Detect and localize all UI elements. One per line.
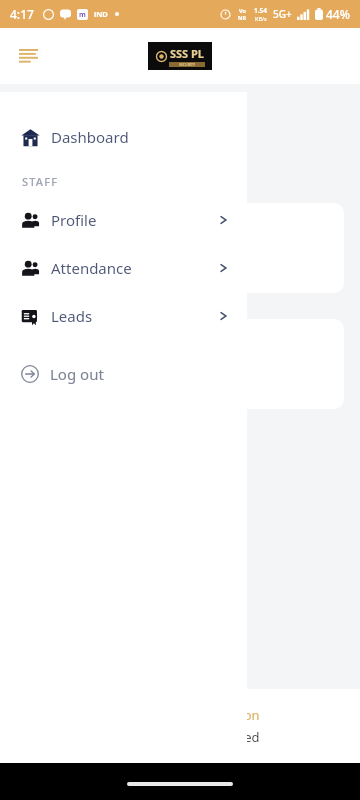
staticText: Leads <box>51 306 93 326</box>
staticText: Vo <box>239 7 246 14</box>
staticText: SECURITY <box>179 62 195 67</box>
staticText: NR <box>238 14 247 21</box>
staticText: © 2024 All rights reserved <box>101 728 260 746</box>
staticText: m <box>79 10 86 20</box>
button[interactable] <box>16 319 344 409</box>
staticText: iND <box>94 9 108 19</box>
staticText: KB/s <box>255 15 267 22</box>
staticText: 4:17 <box>10 6 34 22</box>
button[interactable]: Open navigation menu <box>8 36 48 76</box>
staticText: 44% <box>326 6 350 22</box>
staticText: SSS PL <box>170 46 205 61</box>
staticText: Log out <box>50 364 104 384</box>
staticText: Dashboard <box>51 127 129 147</box>
button[interactable]: Profile <box>0 203 247 237</box>
staticText: SSS PL Security & Solution <box>101 706 260 724</box>
staticText: Profile <box>51 210 97 230</box>
staticText: STAFF <box>22 174 59 189</box>
button[interactable] <box>16 203 344 293</box>
staticText: Attendance <box>51 258 132 278</box>
button[interactable]: Leads <box>0 299 247 333</box>
button[interactable]: Log out <box>0 357 247 391</box>
staticText: 5G+ <box>273 7 292 21</box>
button[interactable]: Dashboard <box>0 120 247 154</box>
staticText: 1.54 <box>254 6 267 15</box>
button[interactable]: Attendance <box>0 251 247 285</box>
